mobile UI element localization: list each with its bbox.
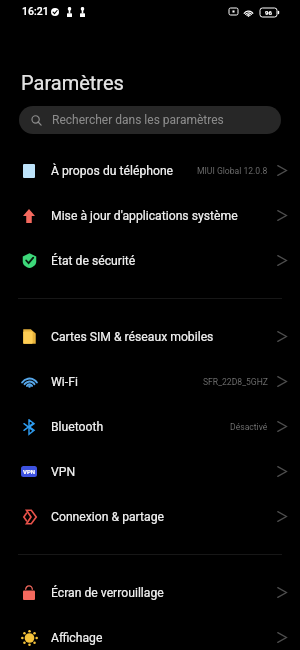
staticText: Paramètres — [21, 71, 124, 94]
button[interactable]: Cartes SIM & réseaux mobiles — [0, 314, 300, 359]
staticText: VPN — [51, 465, 76, 479]
staticText: À propos du téléphone — [51, 164, 174, 178]
button[interactable]: Écran de verrouillage — [0, 570, 300, 615]
staticText: Bluetooth — [51, 420, 104, 434]
staticText: Désactivé — [230, 422, 268, 432]
staticText: Affichage — [51, 631, 103, 645]
button[interactable]: Affichage — [0, 615, 300, 650]
button[interactable]: À propos du téléphone — [0, 148, 300, 193]
staticText: MIUI Global 12.0.8 — [197, 166, 268, 176]
staticText: Wi-Fi — [51, 375, 78, 389]
staticText: Écran de verrouillage — [51, 586, 164, 600]
staticText: VPN — [23, 468, 36, 475]
staticText: 16:21 — [22, 5, 49, 17]
staticText: 96 — [265, 9, 272, 16]
staticText: État de sécurité — [51, 254, 136, 268]
staticText: Cartes SIM & réseaux mobiles — [51, 330, 214, 344]
staticText: Rechercher dans les paramètres — [52, 113, 224, 127]
button[interactable]: Rechercher dans les paramètres — [19, 106, 281, 134]
button[interactable]: Bluetooth — [0, 404, 300, 449]
button[interactable]: Connexion & partage — [0, 494, 300, 539]
staticText: Connexion & partage — [51, 510, 164, 524]
staticText: SFR_22D8_5GHZ — [203, 377, 268, 387]
staticText: Mise à jour d'applications système — [51, 209, 238, 223]
button[interactable]: Mise à jour d'applications système — [0, 193, 300, 238]
button[interactable]: VPN — [0, 449, 300, 494]
button[interactable]: État de sécurité — [0, 238, 300, 283]
button[interactable]: Wi-Fi — [0, 359, 300, 404]
